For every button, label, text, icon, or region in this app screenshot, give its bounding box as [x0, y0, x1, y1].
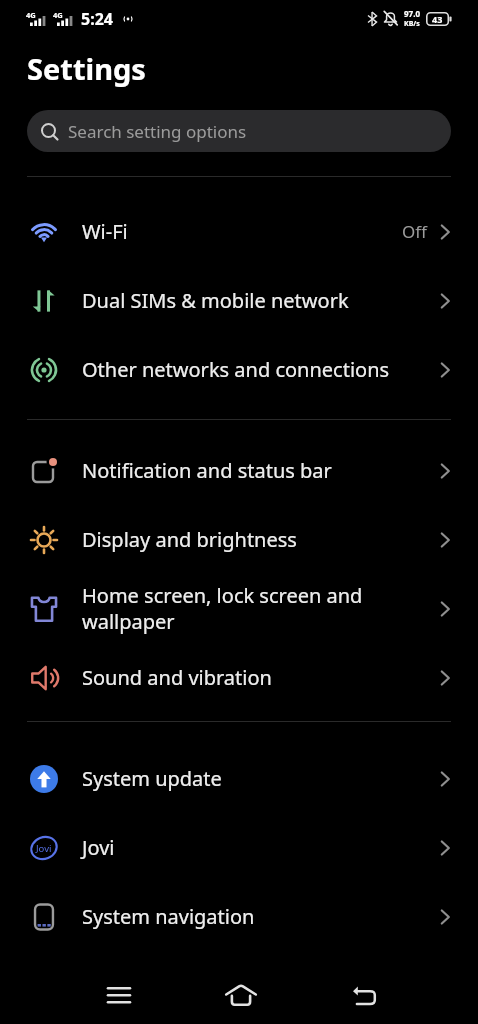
staticText: Jovi [36, 842, 52, 855]
staticText: Dual SIMs & mobile network [82, 287, 349, 314]
staticText: 43 [432, 13, 443, 25]
button[interactable]: System update [0, 744, 478, 813]
button[interactable]: Display and brightness [0, 505, 478, 574]
button[interactable]: Jovi [0, 813, 478, 882]
button[interactable]: System navigation [0, 882, 478, 951]
staticText: 4G [26, 10, 36, 20]
staticText: Wi-Fi [82, 218, 128, 245]
staticText: 5:24 [81, 8, 113, 30]
staticText: KB/s [404, 19, 420, 29]
staticText: Home screen, lock screen and wallpaper [82, 582, 363, 635]
staticText: System navigation [82, 903, 255, 930]
staticText: 97.0 [404, 8, 420, 19]
button[interactable] [340, 971, 388, 1019]
staticText: Notification and status bar [82, 457, 332, 484]
staticText: Other networks and connections [82, 356, 390, 383]
button[interactable] [95, 971, 143, 1019]
button[interactable]: Sound and vibration [0, 643, 478, 712]
button[interactable]: Home screen, lock screen and wallpaper [0, 574, 478, 643]
staticText: System update [82, 765, 222, 792]
staticText: Display and brightness [82, 526, 297, 553]
staticText: Sound and vibration [82, 664, 272, 691]
staticText: 4G [53, 10, 63, 20]
button[interactable]: Wi-Fi [0, 197, 478, 266]
staticText: Settings [27, 49, 146, 88]
staticText: Search setting options [68, 120, 247, 143]
staticText: Jovi [82, 834, 115, 861]
button[interactable]: Notification and status bar [0, 436, 478, 505]
button[interactable]: Other networks and connections [0, 335, 478, 404]
button[interactable]: Search setting options [27, 110, 451, 152]
button[interactable] [217, 971, 265, 1019]
button[interactable]: Dual SIMs & mobile network [0, 266, 478, 335]
staticText: Off [402, 220, 427, 243]
